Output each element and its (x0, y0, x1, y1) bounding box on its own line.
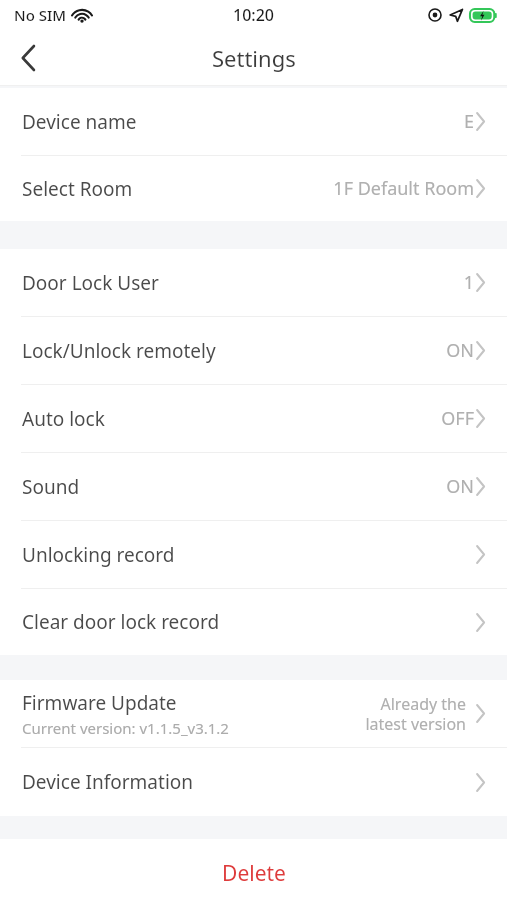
staticText: Already the latest version (365, 693, 466, 734)
staticText: Device name (22, 109, 137, 135)
staticText: Delete (222, 859, 286, 888)
button[interactable]: Delete (0, 839, 507, 900)
staticText: Select Room (22, 176, 133, 202)
button[interactable]: Unlocking record (0, 521, 507, 588)
button[interactable]: Auto lock (0, 385, 507, 452)
staticText: Unlocking record (22, 542, 175, 568)
button[interactable]: Device Information (0, 748, 507, 816)
staticText: Settings (212, 43, 296, 73)
button[interactable]: Sound (0, 453, 507, 520)
button[interactable]: Select Room (0, 156, 507, 221)
staticText: Auto lock (22, 406, 105, 432)
button[interactable]: Device name (0, 88, 507, 155)
staticText: ON (446, 338, 474, 363)
staticText: Firmware Update (22, 690, 177, 716)
button[interactable]: Firmware Update (0, 680, 507, 747)
staticText: 1 (463, 270, 474, 295)
staticText: Lock/Unlock remotely (22, 338, 216, 364)
staticText: Device Information (22, 769, 194, 795)
button[interactable]: Clear door lock record (0, 589, 507, 655)
staticText: 10:20 (233, 4, 274, 26)
staticText: Current version: v1.1.5_v3.1.2 (22, 718, 229, 738)
button[interactable]: Lock/Unlock remotely (0, 317, 507, 384)
staticText: No SIM (14, 5, 67, 25)
staticText: Door Lock User (22, 270, 159, 296)
staticText: Clear door lock record (22, 609, 220, 635)
staticText: ON (446, 474, 474, 499)
staticText: Sound (22, 474, 80, 500)
button[interactable]: Door Lock User (0, 249, 507, 316)
staticText: E (463, 109, 474, 134)
button[interactable]: Back (0, 30, 56, 86)
staticText: 1F Default Room (333, 176, 474, 201)
staticText: OFF (441, 406, 474, 431)
